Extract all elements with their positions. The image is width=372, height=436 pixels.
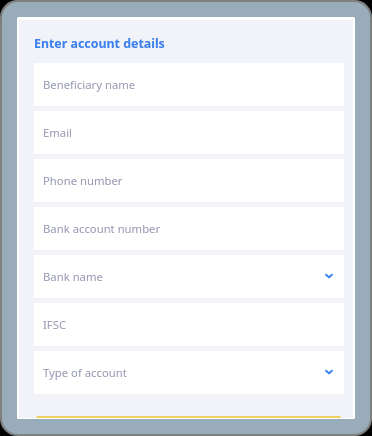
staticText: Email bbox=[43, 125, 73, 140]
button[interactable] bbox=[36, 416, 341, 418]
staticText: Beneficiary name bbox=[43, 77, 136, 92]
staticText: Bank account number bbox=[43, 221, 161, 236]
button[interactable]: Email bbox=[34, 111, 344, 154]
staticText: Enter account details bbox=[34, 35, 165, 52]
other: Open dropdown bbox=[325, 272, 333, 280]
staticText: Phone number bbox=[43, 173, 123, 188]
button[interactable]: Bank name bbox=[34, 255, 344, 298]
button[interactable]: Bank account number bbox=[34, 207, 344, 250]
button[interactable]: IFSC bbox=[34, 303, 344, 346]
staticText: Type of account bbox=[43, 365, 127, 380]
staticText: IFSC bbox=[43, 317, 67, 332]
button[interactable]: Beneficiary name bbox=[34, 63, 344, 106]
other: Open dropdown bbox=[325, 368, 333, 376]
button[interactable]: Phone number bbox=[34, 159, 344, 202]
staticText: Bank name bbox=[43, 269, 103, 284]
button[interactable]: Type of account bbox=[34, 351, 344, 394]
